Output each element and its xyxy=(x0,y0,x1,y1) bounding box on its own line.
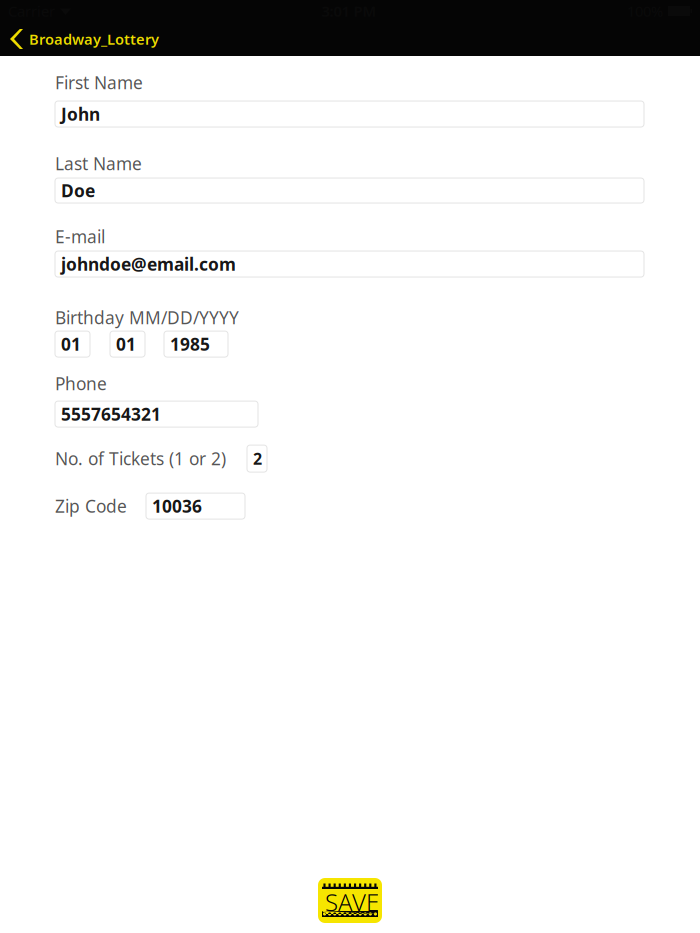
button[interactable]: 5557654321 xyxy=(55,401,258,427)
staticText: johndoe@email.com xyxy=(61,252,236,275)
button[interactable]: 2 xyxy=(247,445,267,472)
staticText: No. of Tickets (1 or 2) xyxy=(55,447,226,470)
staticText: Phone xyxy=(55,372,107,395)
button[interactable]: 10036 xyxy=(146,493,245,519)
staticText: 01 xyxy=(61,333,81,356)
button[interactable]: Broadway_Lottery xyxy=(0,22,171,56)
button[interactable]: 1985 xyxy=(164,331,228,357)
staticText: John xyxy=(61,102,100,125)
staticText: Zip Code xyxy=(55,495,127,518)
button[interactable]: John xyxy=(55,101,644,127)
button[interactable]: Save xyxy=(318,878,382,923)
button[interactable]: Doe xyxy=(55,178,644,203)
staticText: 10036 xyxy=(152,495,202,518)
button[interactable]: johndoe@email.com xyxy=(55,251,644,277)
staticText: 01 xyxy=(116,333,136,356)
staticText: SAVE xyxy=(325,886,379,918)
staticText: 5557654321 xyxy=(61,403,161,426)
button[interactable]: 01 xyxy=(110,331,145,357)
staticText: Last Name xyxy=(55,152,142,175)
staticText: Birthday MM/DD/YYYY xyxy=(55,306,239,329)
staticText: 1985 xyxy=(170,333,210,356)
staticText: Broadway_Lottery xyxy=(29,29,159,49)
staticText: E-mail xyxy=(55,225,105,248)
staticText: Doe xyxy=(61,179,95,202)
staticText: First Name xyxy=(55,71,143,94)
button[interactable]: 01 xyxy=(55,331,90,357)
staticText: 2 xyxy=(253,448,262,469)
